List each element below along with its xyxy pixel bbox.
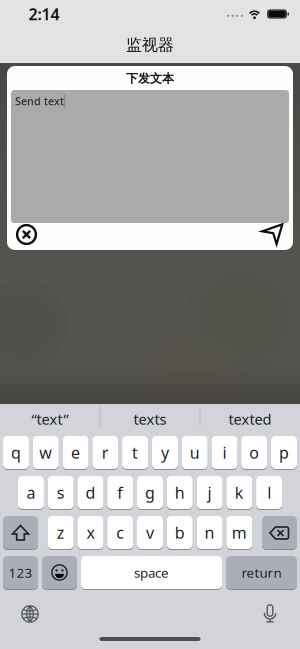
button[interactable]: a xyxy=(18,476,44,510)
staticText: s xyxy=(57,482,65,503)
button[interactable]: g xyxy=(137,476,163,510)
button[interactable]: f xyxy=(107,476,133,510)
staticText: j xyxy=(208,482,212,503)
staticText: m xyxy=(232,522,247,543)
button[interactable]: Send text xyxy=(11,90,289,223)
button[interactable]: w xyxy=(33,436,59,470)
button[interactable]: texts xyxy=(100,404,199,434)
button[interactable] xyxy=(18,602,42,626)
staticText: 2:14 xyxy=(28,3,59,25)
button[interactable]: s xyxy=(48,476,74,510)
staticText: return xyxy=(241,564,281,581)
staticText: t xyxy=(132,442,138,463)
staticText: o xyxy=(249,442,259,463)
button[interactable]: h xyxy=(167,476,193,510)
button[interactable] xyxy=(257,218,289,250)
button[interactable]: c xyxy=(107,516,133,550)
staticText: c xyxy=(116,522,124,543)
staticText: f xyxy=(117,482,123,503)
staticText: 下发文本 xyxy=(126,71,174,86)
staticText: e xyxy=(71,442,80,463)
staticText: b xyxy=(175,522,185,543)
button[interactable]: d xyxy=(77,476,103,510)
staticText: l xyxy=(267,482,271,503)
button[interactable]: l xyxy=(256,476,282,510)
staticText: u xyxy=(190,442,200,463)
button[interactable]: 123 xyxy=(3,556,38,590)
staticText: texts xyxy=(133,409,166,429)
staticText: p xyxy=(279,442,289,463)
staticText: v xyxy=(146,522,154,543)
button[interactable]: k xyxy=(226,476,252,510)
staticText: n xyxy=(205,522,215,543)
staticText: q xyxy=(11,442,21,463)
staticText: i xyxy=(222,442,226,463)
staticText: “text” xyxy=(31,409,68,429)
staticText: y xyxy=(161,442,169,463)
button[interactable]: y xyxy=(152,436,178,470)
staticText: g xyxy=(145,482,155,503)
button[interactable] xyxy=(42,556,77,590)
button[interactable]: m xyxy=(226,516,252,550)
button[interactable]: o xyxy=(241,436,267,470)
button[interactable]: texted xyxy=(200,404,299,434)
button[interactable]: t xyxy=(122,436,148,470)
button[interactable] xyxy=(258,602,282,626)
button[interactable]: “text” xyxy=(0,404,99,434)
button[interactable]: return xyxy=(226,556,297,590)
staticText: d xyxy=(85,482,95,503)
staticText: Send text xyxy=(15,94,64,108)
button[interactable] xyxy=(262,516,297,550)
staticText: w xyxy=(39,442,52,463)
button[interactable]: n xyxy=(197,516,223,550)
button[interactable]: q xyxy=(3,436,29,470)
button[interactable]: i xyxy=(211,436,237,470)
button[interactable]: x xyxy=(77,516,103,550)
button[interactable]: r xyxy=(92,436,118,470)
staticText: 监视器 xyxy=(126,35,174,55)
button[interactable]: v xyxy=(137,516,163,550)
staticText: k xyxy=(235,482,244,503)
button[interactable]: j xyxy=(197,476,223,510)
button[interactable]: z xyxy=(48,516,74,550)
staticText: 123 xyxy=(8,564,32,581)
staticText: r xyxy=(102,442,109,463)
staticText: texted xyxy=(228,409,271,429)
button[interactable]: b xyxy=(167,516,193,550)
staticText: z xyxy=(57,522,65,543)
staticText: a xyxy=(26,482,35,503)
staticText: h xyxy=(175,482,185,503)
button[interactable]: p xyxy=(271,436,297,470)
button[interactable] xyxy=(11,219,41,249)
button[interactable]: e xyxy=(63,436,89,470)
button[interactable]: space xyxy=(81,556,222,590)
button[interactable]: u xyxy=(182,436,208,470)
staticText: space xyxy=(134,564,169,581)
button[interactable] xyxy=(3,516,38,550)
staticText: x xyxy=(86,522,94,543)
